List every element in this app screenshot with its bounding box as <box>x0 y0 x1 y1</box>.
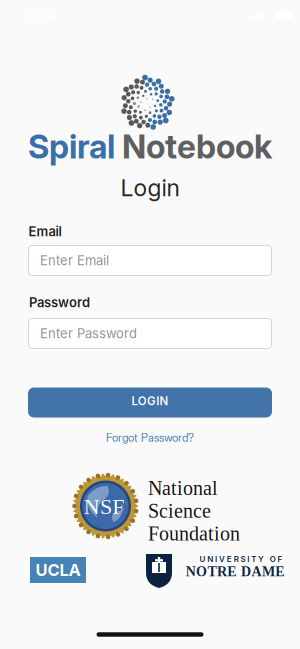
staticText: Science <box>148 500 211 522</box>
staticText: Login <box>120 174 179 202</box>
staticText: Foundation <box>148 523 240 545</box>
staticText: National <box>148 477 218 499</box>
staticText: UCLA <box>35 560 80 580</box>
staticText: Forgot Password? <box>106 431 194 444</box>
staticText: LOGIN <box>131 394 169 408</box>
staticText: Spiral <box>28 127 122 166</box>
button[interactable]: Enter Email <box>28 245 272 276</box>
staticText: Enter Password <box>40 326 137 341</box>
staticText: NSF <box>84 494 124 519</box>
staticText: Enter Email <box>40 253 109 268</box>
staticText: Password <box>29 295 90 310</box>
button[interactable]: Forgot Password? <box>106 431 194 444</box>
staticText: Email <box>28 224 61 239</box>
staticText: NOTRE DAME <box>186 564 284 579</box>
button[interactable]: LOGIN <box>28 387 272 417</box>
staticText: Notebook <box>122 127 272 166</box>
button[interactable]: Enter Password <box>28 318 272 349</box>
staticText: UNIVERSITY OF <box>199 554 283 564</box>
